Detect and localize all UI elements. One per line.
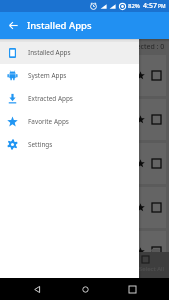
button[interactable]: Installed Apps	[0, 41, 139, 64]
button[interactable]: Extracted Apps	[0, 87, 139, 110]
staticText: PM	[158, 3, 166, 10]
staticText: Selected : 0	[127, 42, 165, 52]
staticText: 4:57	[143, 1, 157, 11]
staticText: Favorite Apps	[28, 117, 69, 126]
button[interactable]: System Apps	[0, 64, 139, 87]
button[interactable]: Home	[74, 278, 96, 300]
staticText: Installed Apps	[27, 19, 92, 32]
button[interactable]: Recents	[121, 278, 143, 300]
button[interactable]: Settings	[0, 133, 139, 156]
button[interactable]: Back	[0, 12, 27, 39]
staticText: Extracted Apps	[28, 94, 73, 103]
staticText: Settings	[28, 140, 53, 149]
staticText: 82%	[128, 2, 140, 10]
button[interactable]: Back	[26, 278, 48, 300]
staticText: System Apps	[28, 71, 67, 80]
button[interactable]: Favorite Apps	[0, 110, 139, 133]
staticText: Select All	[139, 265, 165, 273]
staticText: Installed Apps	[28, 48, 71, 57]
button[interactable]: Select All	[0, 252, 169, 278]
